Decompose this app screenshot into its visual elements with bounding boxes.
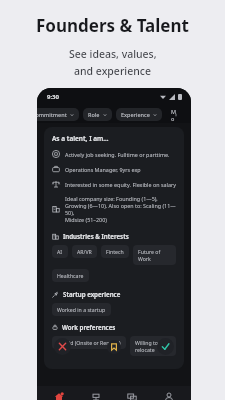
staticText: Experience bbox=[121, 111, 150, 118]
button[interactable]: Accept bbox=[157, 338, 174, 355]
staticText: Actively job seeking. Fulltime or partti… bbox=[65, 151, 170, 158]
staticText: Healthcare bbox=[57, 272, 84, 279]
staticText: Hybrid (Onsite or Remote) bbox=[57, 339, 121, 346]
button[interactable]: More bbox=[166, 106, 181, 123]
staticText: More bbox=[171, 108, 176, 121]
button[interactable]: Fintech bbox=[101, 245, 129, 258]
staticText: Industries & Interests bbox=[63, 232, 129, 240]
button[interactable]: Future of Work bbox=[133, 245, 176, 265]
staticText: Work preferences bbox=[62, 323, 116, 331]
staticText: Willing to relocate bbox=[135, 339, 171, 353]
button[interactable]: Experience bbox=[116, 108, 162, 121]
staticText: Ideal company size: Founding (1—5), Grow… bbox=[65, 195, 176, 223]
staticText: AI bbox=[57, 248, 63, 255]
staticText: Role bbox=[88, 111, 100, 118]
button[interactable]: Hybrid (Onsite or Remote) bbox=[52, 336, 126, 349]
staticText: Startup experience bbox=[63, 290, 121, 298]
button[interactable]: AI bbox=[52, 245, 68, 258]
staticText: AR/VR bbox=[77, 248, 92, 255]
button[interactable]: AR/VR bbox=[72, 245, 97, 258]
staticText: Interested in some equity. Flexible on s… bbox=[65, 181, 176, 188]
staticText: See ideas, values, bbox=[69, 47, 157, 61]
button[interactable]: Home bbox=[44, 386, 74, 400]
staticText: Commitment bbox=[37, 111, 67, 118]
button[interactable]: As a talent, I am... bbox=[44, 127, 184, 369]
button[interactable]: Healthcare bbox=[52, 269, 89, 282]
button[interactable]: Profile bbox=[154, 386, 184, 400]
staticText: Operations Manager, 9yrs exp bbox=[65, 166, 141, 173]
button[interactable]: Save bbox=[107, 340, 121, 354]
staticText: Fintech bbox=[106, 248, 124, 255]
button[interactable]: Commitment bbox=[37, 108, 79, 121]
staticText: and experience bbox=[74, 64, 151, 78]
button[interactable]: Messages bbox=[117, 386, 147, 400]
button[interactable]: Jobs bbox=[81, 386, 111, 400]
button[interactable]: Pass bbox=[54, 338, 71, 355]
button[interactable]: Willing to relocate bbox=[130, 336, 176, 356]
staticText: 9:30 bbox=[47, 93, 59, 101]
staticText: Future of Work bbox=[138, 248, 171, 262]
button[interactable]: Role bbox=[83, 108, 112, 121]
button[interactable]: Worked in a startup bbox=[52, 303, 111, 316]
staticText: As a talent, I am... bbox=[52, 134, 109, 143]
staticText: Founders & Talent bbox=[36, 14, 189, 37]
staticText: Worked in a startup bbox=[57, 306, 106, 313]
